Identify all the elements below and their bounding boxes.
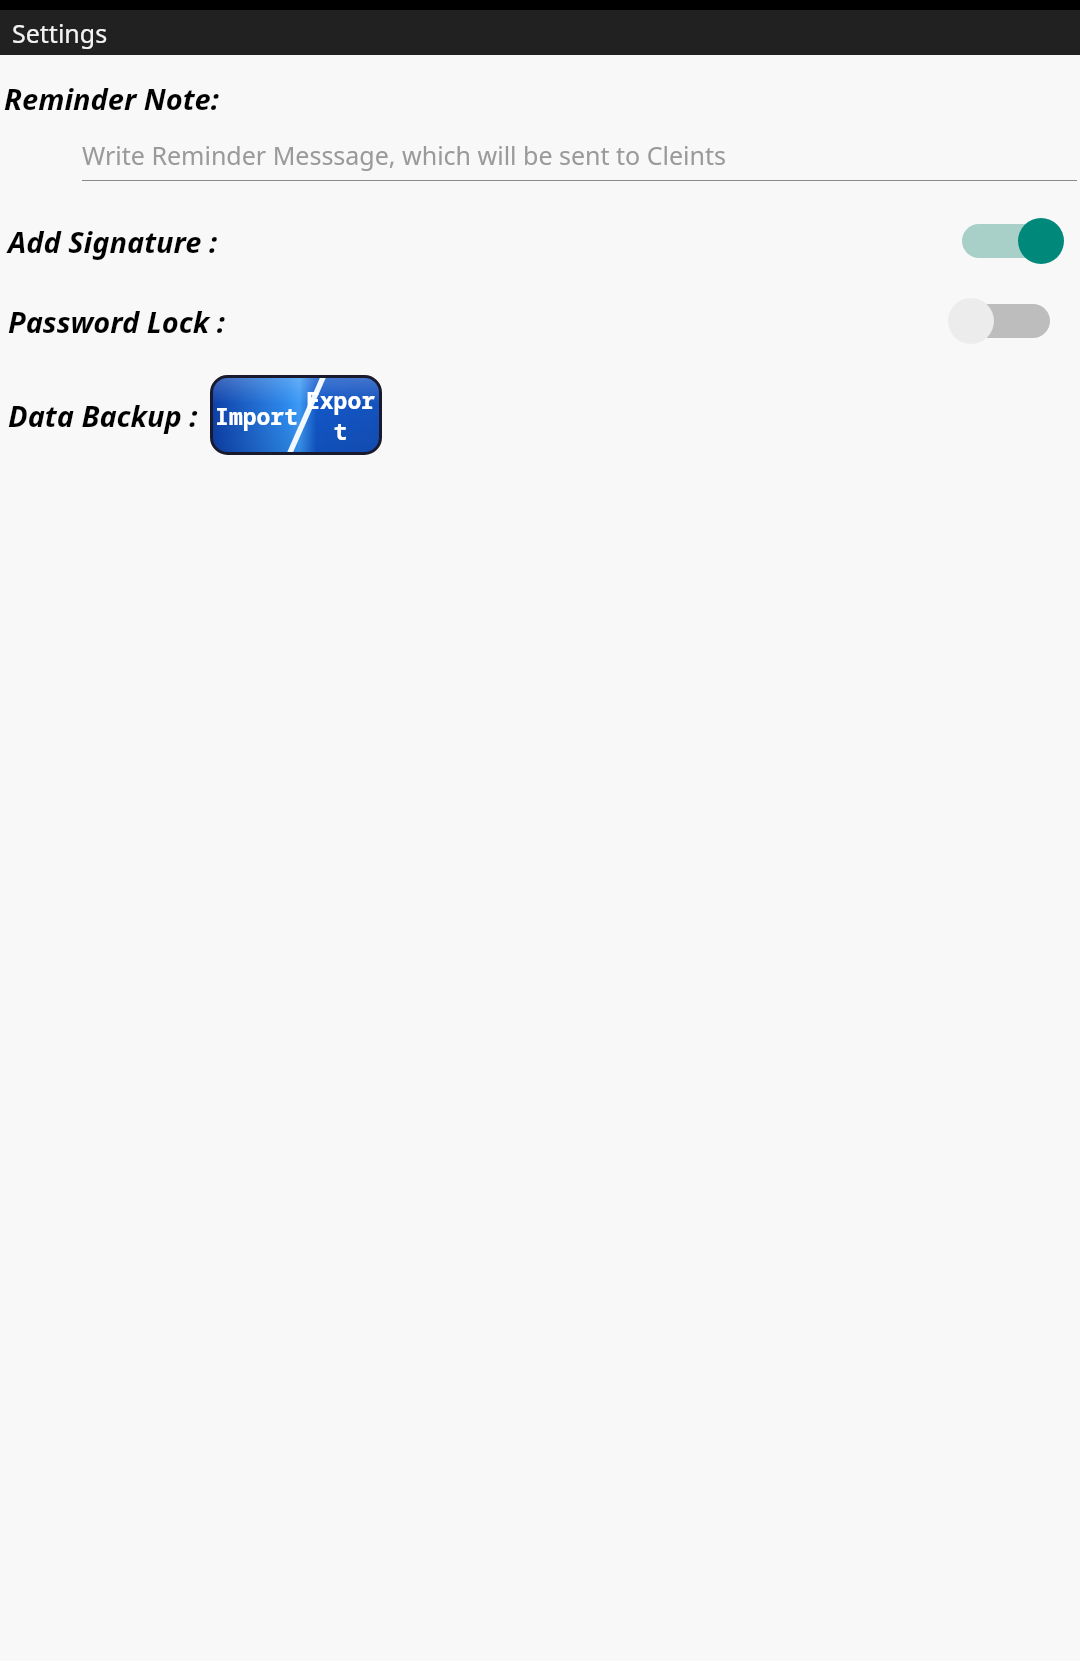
staticText: Import [215, 400, 298, 431]
staticText: Add Signature : [8, 222, 218, 261]
button[interactable]: Write Reminder Messsage, which will be s… [82, 138, 1077, 181]
staticText: Settings [12, 16, 108, 50]
button[interactable]: On [950, 213, 1070, 269]
staticText: Data Backup : [8, 396, 198, 435]
button[interactable]: Export [301, 377, 380, 453]
staticText: Export [301, 384, 380, 446]
staticText: Reminder Note: [4, 79, 220, 118]
button[interactable]: Off [942, 293, 1062, 349]
staticText: Write Reminder Messsage, which will be s… [82, 138, 726, 172]
staticText: Password Lock : [8, 302, 226, 341]
button[interactable]: Import [212, 377, 301, 453]
